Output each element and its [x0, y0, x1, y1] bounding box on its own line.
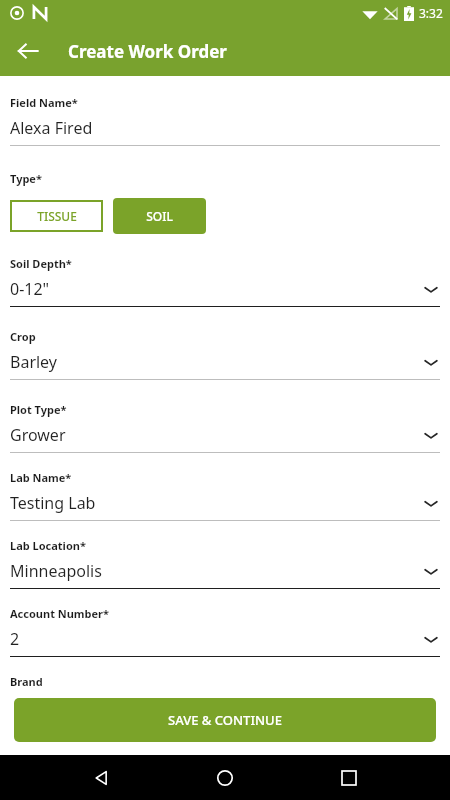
staticText: Account Number* [10, 606, 109, 621]
staticText: 3:32 [419, 5, 443, 21]
staticText: Minneapolis [10, 560, 102, 582]
staticText: 0-12" [10, 278, 50, 300]
staticText: SOIL [146, 208, 173, 224]
staticText: Soil Depth* [10, 256, 72, 271]
button[interactable]: Field Name* [10, 95, 440, 146]
staticText: Crop [10, 329, 36, 344]
staticText: Create Work Order [68, 40, 227, 63]
button[interactable]: Home [203, 756, 247, 800]
button[interactable]: Lab Name* [10, 470, 440, 521]
button[interactable]: Crop [10, 329, 440, 380]
button[interactable]: Soil Depth* [10, 256, 440, 307]
button[interactable]: Recent apps [327, 756, 371, 800]
button[interactable]: Back [8, 31, 48, 71]
button[interactable]: Lab Location* [10, 538, 440, 589]
staticText: Barley [10, 351, 57, 373]
button[interactable]: SOIL [113, 198, 206, 234]
staticText: Grower [10, 424, 66, 446]
staticText: TISSUE [37, 208, 77, 224]
staticText: Lab Name* [10, 470, 72, 485]
button[interactable]: SAVE & CONTINUE [14, 698, 436, 742]
staticText: Alexa Fired [10, 117, 93, 139]
button[interactable]: Plot Type* [10, 402, 440, 453]
staticText: Testing Lab [10, 492, 96, 514]
staticText: Field Name* [10, 95, 78, 110]
button[interactable]: Back [80, 756, 124, 800]
staticText: Lab Location* [10, 538, 86, 553]
staticText: 2 [10, 628, 20, 650]
staticText: Brand [10, 674, 43, 689]
staticText: SAVE & CONTINUE [168, 711, 282, 729]
button[interactable]: Account Number* [10, 606, 440, 657]
staticText: Type* [10, 171, 42, 186]
staticText: Plot Type* [10, 402, 67, 417]
button[interactable]: TISSUE [10, 200, 103, 232]
